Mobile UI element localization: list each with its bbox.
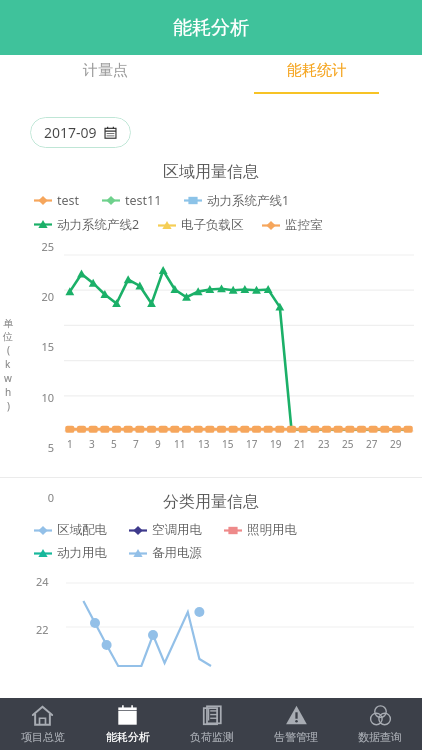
staticText: 27 [366, 437, 378, 451]
staticText: 区域用量信息 [0, 162, 422, 182]
button[interactable]: 负荷监测 [170, 704, 254, 744]
button[interactable]: 计量点 [0, 55, 211, 94]
staticText: w [4, 371, 12, 385]
staticText: 区域配电 [57, 522, 107, 538]
staticText: 分类用量信息 [0, 492, 422, 512]
staticText: 10 [0, 390, 54, 405]
staticText: 23 [318, 437, 330, 451]
staticText: 22 [36, 622, 49, 637]
staticText: test11 [125, 192, 162, 209]
staticText: 负荷监测 [190, 730, 234, 744]
button[interactable]: 2017-09 [30, 117, 131, 148]
staticText: 监控室 [285, 217, 323, 233]
staticText: 动力系统产线2 [57, 216, 140, 233]
staticText: 5 [111, 437, 117, 451]
staticText: h [5, 385, 12, 399]
staticText: 24 [36, 574, 49, 589]
staticText: 备用电源 [152, 545, 202, 561]
staticText: 能耗统计 [287, 61, 347, 80]
staticText: 15 [0, 339, 54, 354]
staticText: 7 [133, 437, 139, 451]
staticText: 13 [198, 437, 210, 451]
staticText: 15 [222, 437, 234, 451]
staticText: 单 [3, 317, 13, 330]
staticText: 25 [342, 437, 354, 451]
staticText: 数据查询 [358, 730, 402, 744]
button[interactable]: 告警管理 [254, 704, 338, 744]
staticText: 项目总览 [21, 730, 65, 744]
staticText: 17 [246, 437, 258, 451]
staticText: test [57, 192, 80, 209]
staticText: 电子负载区 [181, 217, 244, 233]
staticText: 空调用电 [152, 522, 202, 538]
staticText: k [5, 357, 11, 371]
staticText: 1 [67, 437, 73, 451]
staticText: 19 [270, 437, 282, 451]
staticText: 5 [0, 440, 54, 455]
staticText: 9 [155, 437, 161, 451]
staticText: 照明用电 [247, 522, 297, 538]
staticText: ) [7, 399, 10, 413]
button[interactable]: 项目总览 [0, 704, 85, 744]
button[interactable]: 能耗分析 [85, 704, 170, 744]
staticText: 21 [294, 437, 306, 451]
staticText: 25 [0, 239, 54, 254]
staticText: 11 [174, 437, 186, 451]
button[interactable]: 能耗统计 [211, 55, 422, 94]
button[interactable]: 数据查询 [338, 704, 422, 744]
staticText: 3 [89, 437, 95, 451]
staticText: 2017-09 [44, 123, 97, 142]
staticText: 能耗分析 [173, 16, 249, 40]
staticText: 动力用电 [57, 545, 107, 561]
staticText: 能耗分析 [106, 730, 150, 744]
staticText: 动力系统产线1 [207, 192, 290, 209]
staticText: 29 [390, 437, 402, 451]
staticText: 计量点 [83, 61, 128, 80]
staticText: ( [7, 343, 10, 357]
staticText: 位 [3, 330, 13, 343]
staticText: 告警管理 [274, 730, 318, 744]
staticText: 20 [0, 289, 54, 304]
staticText: 0 [0, 490, 54, 505]
